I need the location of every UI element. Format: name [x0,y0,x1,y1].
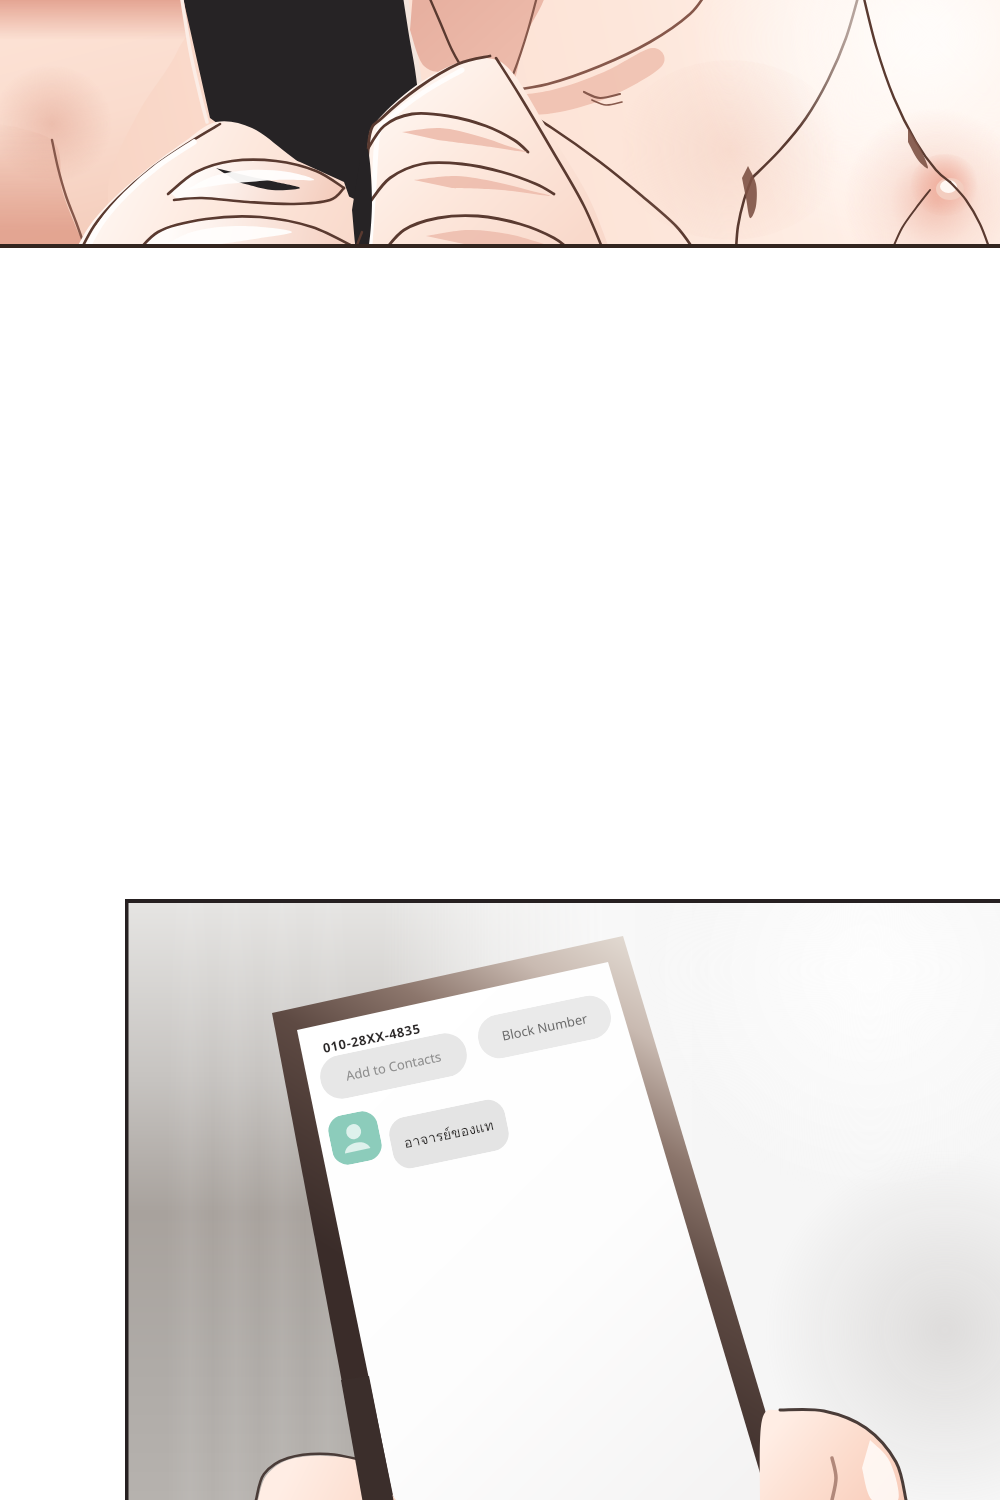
button[interactable]: Block Number [0,0,1000,1500]
staticText: 010-28XX-4835 [321,1019,423,1057]
button[interactable]: 010-28XX-4835 [320,1018,424,1058]
button[interactable]: Contact avatar [325,1108,385,1168]
staticText: Add to Contacts [344,1047,443,1085]
button[interactable]: Add to Contacts [316,1029,471,1103]
staticText: Block Number [500,1009,589,1045]
staticText: อาจารย์ของแท [402,1114,496,1154]
button[interactable]: Block Number [474,992,615,1062]
button[interactable]: อาจารย์ของแท [386,1096,512,1171]
